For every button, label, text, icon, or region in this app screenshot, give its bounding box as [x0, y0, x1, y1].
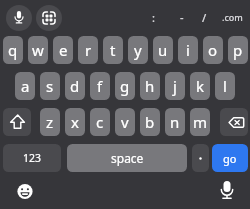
button[interactable]: t — [103, 36, 123, 64]
staticText: .com — [222, 11, 243, 23]
staticText: g — [120, 76, 130, 96]
staticText: v — [121, 112, 129, 132]
staticText: m — [193, 112, 208, 132]
staticText: o — [208, 40, 218, 60]
staticText: c — [96, 112, 104, 132]
staticText: k — [196, 76, 205, 96]
button[interactable]: b — [140, 108, 160, 136]
staticText: w — [32, 40, 44, 60]
staticText: h — [145, 76, 155, 96]
staticText: p — [233, 40, 243, 60]
staticText: d — [70, 76, 80, 96]
staticText: s — [46, 76, 54, 96]
button[interactable]: x — [65, 108, 85, 136]
button[interactable]: f — [90, 72, 110, 100]
staticText: q — [8, 40, 18, 60]
button[interactable]: 123 — [3, 144, 61, 172]
button[interactable]: r — [78, 36, 98, 64]
button[interactable]: h — [140, 72, 160, 100]
button[interactable]: w — [28, 36, 48, 64]
button[interactable]: c — [90, 108, 110, 136]
staticText: l — [223, 76, 227, 96]
button[interactable]: y — [128, 36, 148, 64]
staticText: go — [223, 151, 237, 166]
staticText: e — [59, 40, 68, 60]
button[interactable]: / — [192, 4, 217, 30]
staticText: y — [134, 40, 142, 60]
staticText: u — [158, 40, 168, 60]
staticText: n — [170, 112, 180, 132]
staticText: 123 — [23, 151, 42, 165]
button[interactable]: : — [141, 4, 166, 30]
staticText: t — [110, 40, 116, 60]
button[interactable] — [36, 5, 62, 31]
button[interactable]: k — [190, 72, 210, 100]
button[interactable] — [192, 144, 209, 172]
staticText: / — [202, 10, 207, 25]
button[interactable]: q — [3, 36, 23, 64]
button[interactable] — [14, 181, 36, 203]
button[interactable] — [220, 108, 248, 136]
button[interactable]: .com — [217, 4, 248, 30]
staticText: r — [85, 40, 92, 60]
button[interactable] — [6, 5, 32, 31]
button[interactable]: z — [40, 108, 60, 136]
staticText: x — [71, 112, 79, 132]
button[interactable]: - — [169, 4, 194, 30]
button[interactable]: go — [212, 144, 248, 172]
staticText: j — [173, 76, 177, 96]
button[interactable]: d — [65, 72, 85, 100]
button[interactable] — [3, 108, 31, 136]
staticText: - — [180, 10, 184, 25]
button[interactable]: o — [203, 36, 223, 64]
staticText: z — [46, 112, 54, 132]
button[interactable]: l — [215, 72, 235, 100]
button[interactable]: a — [15, 72, 35, 100]
button[interactable]: i — [178, 36, 198, 64]
button[interactable]: m — [190, 108, 210, 136]
button[interactable]: v — [115, 108, 135, 136]
button[interactable]: u — [153, 36, 173, 64]
button[interactable]: s — [40, 72, 60, 100]
staticText: space — [111, 150, 144, 166]
button[interactable]: g — [115, 72, 135, 100]
button[interactable]: n — [165, 108, 185, 136]
button[interactable]: p — [228, 36, 248, 64]
staticText: i — [186, 40, 190, 60]
staticText: a — [21, 76, 30, 96]
button[interactable]: e — [53, 36, 73, 64]
staticText: : — [152, 10, 155, 25]
button[interactable]: j — [165, 72, 185, 100]
staticText: f — [97, 76, 103, 96]
button[interactable]: space — [67, 144, 187, 172]
staticText: b — [145, 112, 155, 132]
button[interactable] — [215, 178, 241, 204]
